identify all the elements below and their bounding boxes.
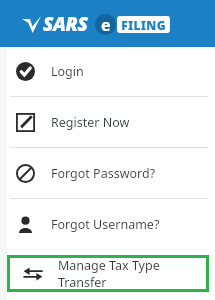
button[interactable]: Manage Tax Type Transfer	[7, 255, 209, 292]
staticText: e	[101, 14, 111, 35]
staticText: Login	[51, 63, 84, 80]
button[interactable]: Register Now	[0, 97, 215, 147]
other: Forgot Password	[16, 164, 35, 183]
other: Login	[16, 62, 35, 81]
button[interactable]: Forgot Username	[0, 199, 215, 249]
other: SARS eFiling	[22, 11, 194, 37]
staticText: Forgot Password?	[51, 165, 156, 182]
button[interactable]: Forgot Password	[0, 148, 215, 198]
other: Register Now	[16, 113, 35, 132]
other: Forgot Username	[16, 215, 35, 234]
staticText: FILING	[121, 17, 166, 33]
button[interactable]: Login	[0, 47, 215, 96]
staticText: Register Now	[51, 114, 130, 131]
staticText: Manage Tax Type Transfer	[58, 257, 209, 291]
staticText: Forgot Username?	[51, 216, 160, 233]
staticText: SARS	[43, 11, 88, 37]
other: Manage Tax Type Transfer	[23, 264, 43, 284]
